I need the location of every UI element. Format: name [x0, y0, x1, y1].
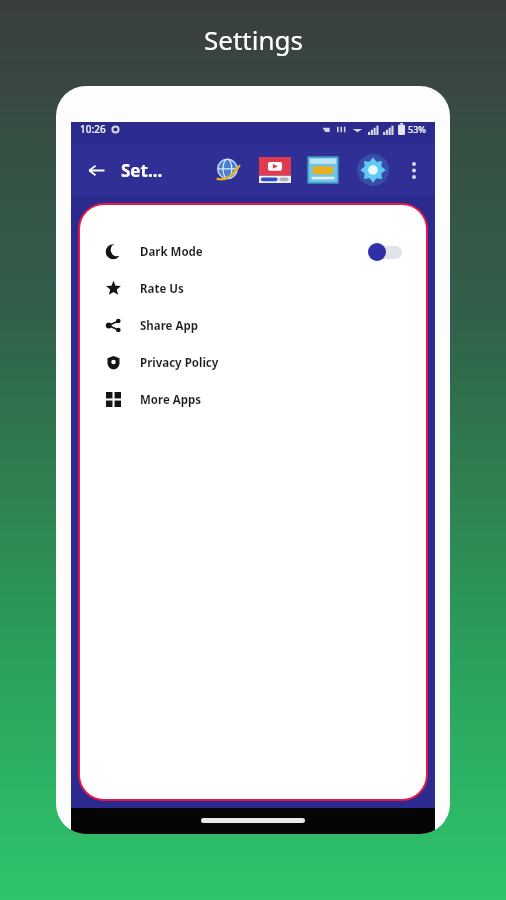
staticText: Set...: [121, 159, 163, 182]
staticText: More Apps: [140, 392, 202, 408]
button[interactable]: Dark Mode toggle: [368, 243, 404, 261]
button[interactable]: Back: [77, 151, 115, 189]
staticText: Dark Mode: [140, 244, 203, 260]
button[interactable]: Banner ads: [305, 152, 341, 188]
button[interactable]: Dark Mode: [80, 233, 426, 270]
button[interactable]: Browser: [211, 153, 245, 187]
button[interactable]: More options: [399, 155, 429, 185]
button[interactable]: More Apps: [80, 381, 426, 418]
staticText: Share App: [140, 318, 198, 334]
button[interactable]: Rate Us: [80, 270, 426, 307]
staticText: Rate Us: [140, 281, 184, 297]
button[interactable]: Video ads: [257, 152, 293, 188]
staticText: 10:26: [80, 122, 106, 136]
button[interactable]: Share App: [80, 307, 426, 344]
staticText: 53%: [408, 123, 426, 135]
staticText: Settings: [204, 22, 303, 57]
staticText: Privacy Policy: [140, 355, 219, 371]
button[interactable]: Privacy Policy: [80, 344, 426, 381]
button[interactable]: Settings: [353, 150, 393, 190]
